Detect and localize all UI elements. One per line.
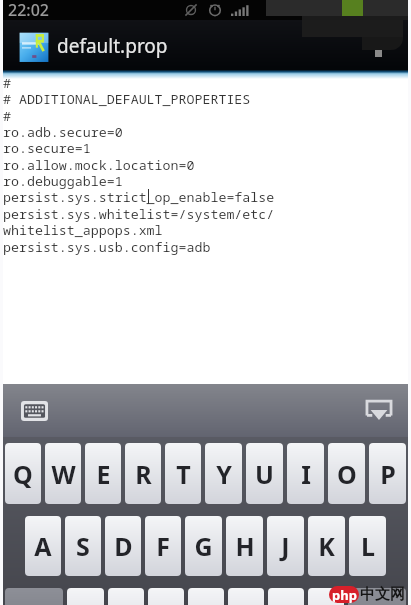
- button[interactable]: P: [369, 443, 406, 504]
- button[interactable]: Z: [67, 588, 104, 605]
- button[interactable]: M: [308, 588, 344, 605]
- staticText: persist.sys.strict_op_enable=false: [3, 188, 275, 206]
- button[interactable]: Q: [5, 443, 41, 504]
- staticText: ro.adb.secure=0: [3, 123, 123, 141]
- staticText: Y: [216, 457, 232, 491]
- button[interactable]: L: [349, 516, 386, 576]
- staticText: U: [255, 457, 274, 491]
- button[interactable]: D: [105, 516, 141, 576]
- button[interactable]: Hide keyboard: [365, 399, 393, 420]
- button[interactable]: X: [108, 588, 144, 605]
- staticText: # ADDITIONAL_DEFAULT_PROPERTIES: [3, 90, 251, 108]
- button[interactable]: S: [65, 516, 101, 576]
- staticText: #: [3, 107, 11, 125]
- button[interactable]: Shift: [5, 588, 63, 605]
- button[interactable]: W: [45, 443, 81, 504]
- staticText: php: [332, 586, 357, 603]
- staticText: K: [318, 529, 335, 563]
- button[interactable]: V: [188, 588, 224, 605]
- button[interactable]: T: [165, 443, 201, 504]
- staticText: whitelist_appops.xml: [3, 221, 163, 239]
- button[interactable]: U: [246, 443, 283, 504]
- button[interactable]: J: [267, 516, 304, 576]
- staticText: ro.debuggable=1: [3, 172, 123, 190]
- staticText: A: [34, 529, 52, 563]
- staticText: F: [156, 529, 170, 563]
- staticText: D: [114, 529, 133, 563]
- button[interactable]: R: [125, 443, 161, 504]
- button[interactable]: I: [287, 443, 324, 504]
- staticText: J: [281, 529, 290, 563]
- staticText: default.prop: [57, 33, 168, 59]
- button[interactable]: A: [25, 516, 61, 576]
- staticText: L: [361, 529, 375, 563]
- button[interactable]: G: [185, 516, 222, 576]
- staticText: I: [301, 457, 311, 491]
- button[interactable]: Y: [205, 443, 242, 504]
- staticText: M: [314, 602, 338, 605]
- staticText: Q: [13, 457, 33, 491]
- staticText: E: [96, 457, 111, 491]
- staticText: ro.allow.mock.location=0: [3, 156, 195, 174]
- staticText: G: [194, 529, 213, 563]
- staticText: S: [76, 529, 90, 563]
- staticText: ro.secure=1: [3, 139, 91, 157]
- button[interactable]: E: [85, 443, 121, 504]
- button[interactable]: H: [226, 516, 263, 576]
- button[interactable]: K: [308, 516, 345, 576]
- button[interactable]: O: [328, 443, 365, 504]
- staticText: 22:02: [8, 0, 49, 19]
- staticText: T: [176, 457, 191, 491]
- button[interactable]: C: [148, 588, 184, 605]
- staticText: #: [3, 74, 11, 92]
- staticText: H: [235, 529, 255, 563]
- button[interactable]: B: [228, 588, 264, 605]
- staticText: O: [337, 457, 357, 491]
- staticText: persist.sys.whitelist=/system/etc/: [3, 205, 275, 223]
- button[interactable]: Delete: [348, 588, 406, 605]
- button[interactable]: N: [268, 588, 304, 605]
- staticText: R: [135, 457, 152, 491]
- button[interactable]: Input method settings: [21, 401, 48, 421]
- staticText: 中文网: [360, 585, 405, 604]
- staticText: W: [51, 457, 76, 491]
- staticText: persist.sys.usb.config=adb: [3, 238, 211, 256]
- button[interactable]: F: [145, 516, 181, 576]
- staticText: P: [380, 457, 396, 491]
